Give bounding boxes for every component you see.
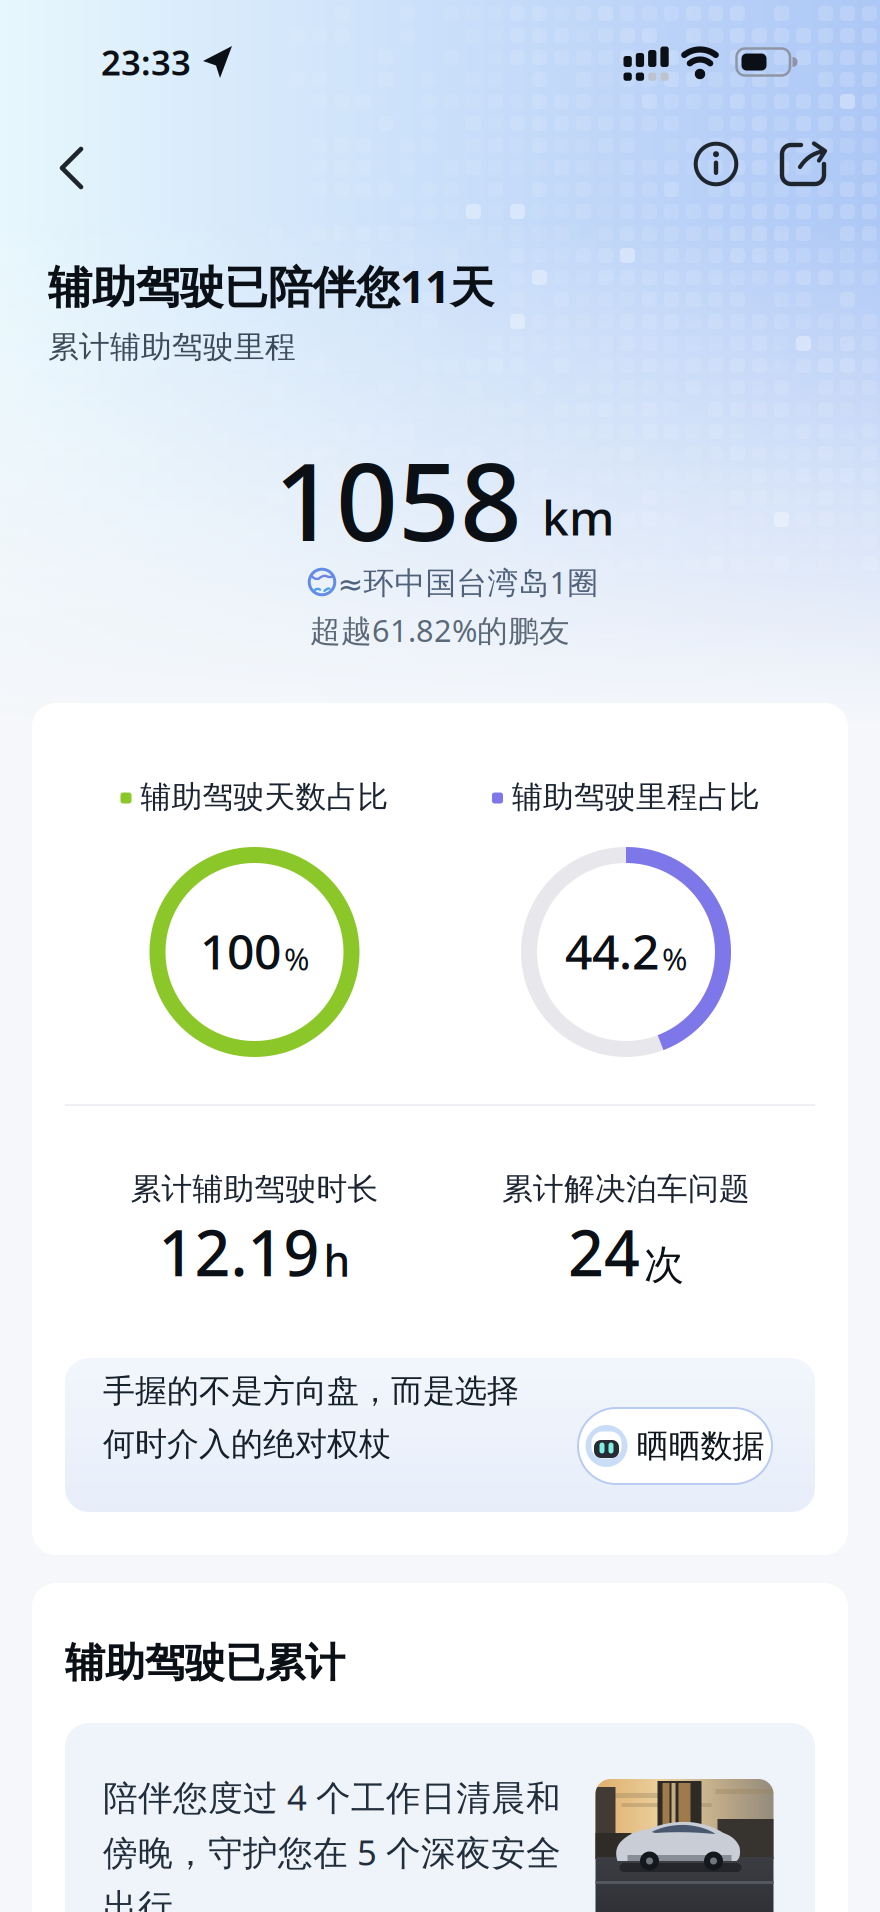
staticText: 44.2 — [565, 919, 659, 983]
button[interactable]: Back — [48, 144, 96, 192]
staticText: 辅助驾驶里程占比 — [512, 778, 760, 816]
staticText: 辅助驾驶已陪伴您11天 — [48, 257, 494, 315]
staticText: 手握的不是方向盘，而是选择 — [103, 1371, 519, 1411]
staticText: 辅助驾驶已累计 — [65, 1638, 345, 1687]
staticText: 陪伴您度过 4 个工作日清晨和 — [103, 1774, 561, 1820]
staticText: 辅助驾驶天数占比 — [140, 778, 388, 816]
staticText: % — [284, 938, 309, 979]
staticText: 24 — [568, 1210, 640, 1294]
staticText: 100 — [200, 919, 281, 983]
staticText: 出行 — [103, 1886, 173, 1912]
button[interactable]: Info — [692, 140, 740, 188]
staticText: 晒晒数据 — [636, 1426, 764, 1466]
button[interactable]: Share — [777, 139, 829, 189]
staticText: h — [323, 1232, 350, 1289]
staticText: 累计辅助驾驶时长 — [130, 1170, 378, 1208]
staticText: 累计辅助驾驶里程 — [48, 328, 296, 366]
staticText: ≈环中国台湾岛1圈 — [337, 562, 598, 602]
staticText: 次 — [644, 1240, 684, 1290]
staticText: 傍晚，守护您在 5 个深夜安全 — [103, 1829, 561, 1875]
staticText: 23:33 — [101, 39, 191, 85]
staticText: 何时介入的绝对权杖 — [103, 1424, 391, 1464]
button[interactable]: 晒晒数据 — [576, 1406, 774, 1486]
staticText: km — [542, 485, 614, 549]
staticText: 超越61.82%的鹏友 — [310, 610, 570, 650]
staticText: % — [662, 938, 687, 979]
staticText: 累计解决泊车问题 — [502, 1170, 750, 1208]
staticText: 12.19 — [158, 1210, 319, 1294]
staticText: 1058 — [274, 427, 522, 571]
